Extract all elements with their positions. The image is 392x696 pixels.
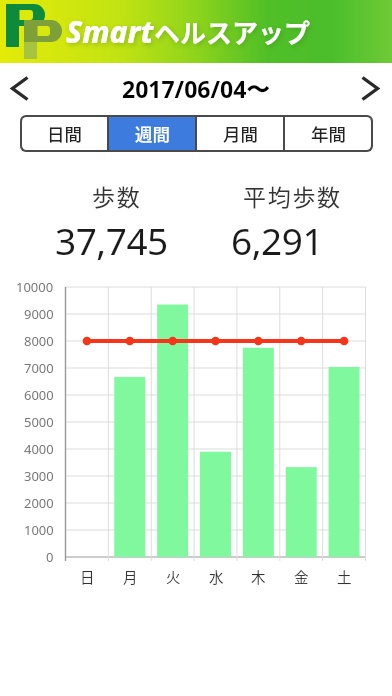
staticText: 3000 xyxy=(24,467,54,485)
button[interactable] xyxy=(356,75,384,101)
staticText: 2000 xyxy=(24,494,54,512)
staticText: 水 xyxy=(209,566,224,587)
button[interactable] xyxy=(6,75,34,101)
staticText: 10000 xyxy=(16,278,54,296)
staticText: 土 xyxy=(337,566,352,587)
button[interactable]: 週間 xyxy=(109,117,195,150)
staticText: 週間 xyxy=(135,121,170,146)
staticText: 歩数 xyxy=(92,179,142,212)
button[interactable]: 月間 xyxy=(197,117,283,150)
button[interactable]: 年間 xyxy=(285,117,371,150)
staticText: 6000 xyxy=(24,386,54,404)
staticText: 月 xyxy=(123,566,138,587)
button[interactable]: 日間 xyxy=(22,117,107,150)
staticText: 日間 xyxy=(47,121,82,146)
staticText: 日 xyxy=(80,566,95,587)
staticText: 5000 xyxy=(24,413,54,431)
staticText: 8000 xyxy=(24,332,54,350)
staticText: 年間 xyxy=(311,121,346,146)
staticText: 2017/06/04〜 xyxy=(122,73,270,104)
staticText: 金 xyxy=(294,566,309,587)
staticText: 月間 xyxy=(223,121,258,146)
staticText: 平均歩数 xyxy=(243,179,342,212)
staticText: Smart xyxy=(66,11,154,52)
staticText: 7000 xyxy=(24,359,54,377)
staticText: 木 xyxy=(251,566,266,587)
staticText: ヘルスアップ xyxy=(154,13,311,51)
staticText: 1000 xyxy=(24,521,54,539)
staticText: 4000 xyxy=(24,440,54,458)
staticText: 37,745 xyxy=(55,215,168,265)
staticText: 6,291 xyxy=(231,215,324,265)
staticText: 0 xyxy=(46,548,54,566)
staticText: 9000 xyxy=(24,305,54,323)
staticText: 火 xyxy=(166,566,181,587)
